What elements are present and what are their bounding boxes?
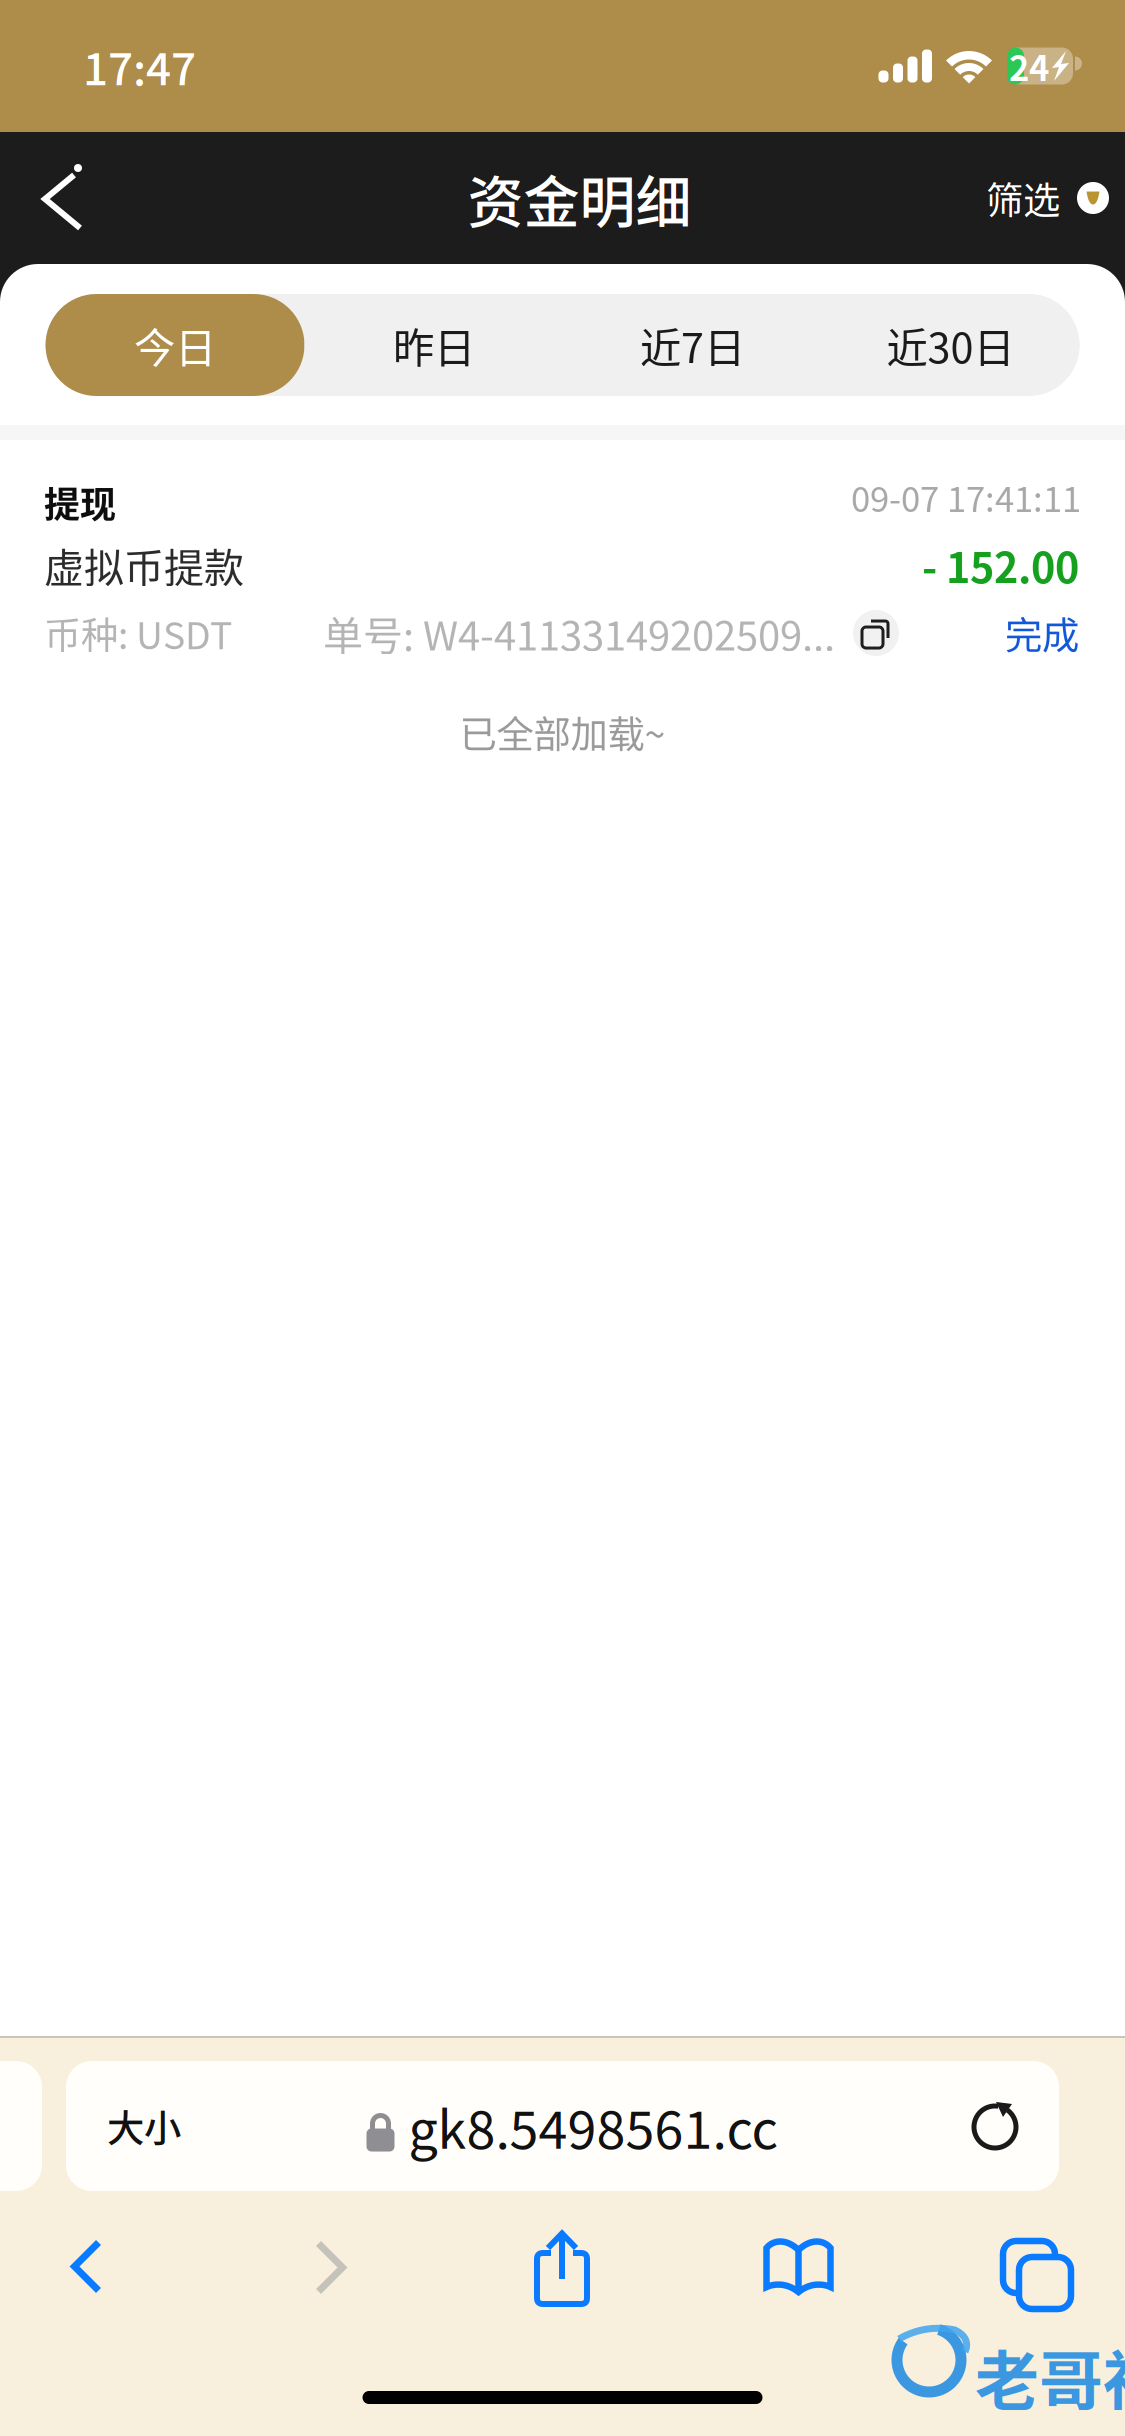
staticText: 今日 (134, 315, 216, 375)
button[interactable]: Copy order number (853, 610, 899, 656)
staticText: 单号: W4-41133149202509... (323, 604, 835, 662)
button[interactable]: 近30日 (821, 294, 1079, 396)
button[interactable]: 今日 (45, 294, 304, 396)
button[interactable]: 完成 (1005, 606, 1079, 660)
button[interactable]: 大小 (66, 2061, 1059, 2191)
staticText: 资金明细 (467, 157, 691, 239)
button[interactable]: Back (0, 2230, 173, 2316)
staticText: 近30日 (886, 315, 1014, 375)
button[interactable]: 筛选 (962, 132, 1125, 264)
button[interactable]: Tabs (961, 2230, 1097, 2316)
staticText: gk8.5498561.cc (408, 2088, 778, 2164)
button[interactable]: 近7日 (563, 294, 821, 396)
button[interactable]: Bookmarks (636, 2230, 961, 2316)
staticText: 24 (1009, 41, 1049, 91)
staticText: 09-07 17:41:11 (851, 472, 1081, 522)
button[interactable]: Share (488, 2230, 636, 2316)
staticText: 老哥社区 (975, 2330, 1125, 2436)
button[interactable]: Forward (173, 2230, 488, 2316)
staticText: 筛选 (986, 171, 1060, 225)
staticText: 提现 (44, 476, 116, 528)
staticText: 近7日 (640, 315, 745, 375)
staticText: 币种: USDT (44, 606, 232, 660)
staticText: 完成 (1005, 606, 1079, 660)
button[interactable]: Back (0, 132, 114, 264)
staticText: 17:47 (83, 34, 196, 98)
staticText: 大小 (107, 2099, 181, 2153)
staticText: 虚拟币提款 (44, 536, 244, 594)
staticText: 已全部加载~ (459, 705, 665, 759)
staticText: 昨日 (393, 315, 475, 375)
button[interactable]: 昨日 (304, 294, 563, 396)
staticText: - 152.00 (922, 535, 1079, 595)
